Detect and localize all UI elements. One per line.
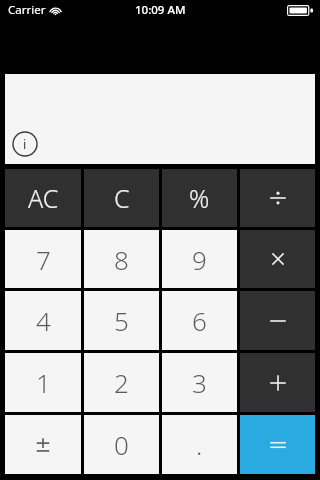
- button[interactable]: Plus minus: [5, 415, 81, 474]
- button[interactable]: 2: [84, 353, 159, 412]
- button[interactable]: Add: [240, 353, 315, 412]
- staticText: 1: [36, 365, 51, 400]
- staticText: AC: [28, 181, 59, 215]
- button[interactable]: 4: [5, 291, 81, 350]
- staticText: %: [189, 181, 210, 215]
- button[interactable]: 6: [162, 291, 237, 350]
- staticText: 3: [192, 365, 207, 400]
- button[interactable]: Equals: [240, 415, 315, 474]
- staticText: i: [23, 135, 27, 153]
- staticText: 6: [192, 303, 207, 338]
- staticText: 4: [36, 303, 51, 338]
- staticText: 2: [114, 365, 129, 400]
- staticText: C: [114, 181, 130, 215]
- staticText: 10:09 AM: [135, 2, 186, 18]
- staticText: Carrier: [8, 2, 46, 18]
- button[interactable]: 7: [5, 230, 81, 288]
- button[interactable]: 1: [5, 353, 81, 412]
- staticText: .: [196, 427, 203, 462]
- button[interactable]: 8: [84, 230, 159, 288]
- button[interactable]: C: [84, 169, 159, 227]
- staticText: 8: [114, 242, 129, 277]
- button[interactable]: %: [162, 169, 237, 227]
- button[interactable]: Info: [12, 131, 38, 157]
- staticText: 9: [192, 242, 207, 277]
- button[interactable]: .: [162, 415, 237, 474]
- button[interactable]: 0: [84, 415, 159, 474]
- button[interactable]: Subtract: [240, 291, 315, 350]
- button[interactable]: 5: [84, 291, 159, 350]
- button[interactable]: 9: [162, 230, 237, 288]
- button[interactable]: Multiply: [240, 230, 315, 288]
- staticText: 5: [114, 303, 129, 338]
- button[interactable]: Divide: [240, 169, 315, 227]
- button[interactable]: AC: [5, 169, 81, 227]
- staticText: 0: [114, 427, 129, 462]
- button[interactable]: 3: [162, 353, 237, 412]
- staticText: 7: [36, 242, 51, 277]
